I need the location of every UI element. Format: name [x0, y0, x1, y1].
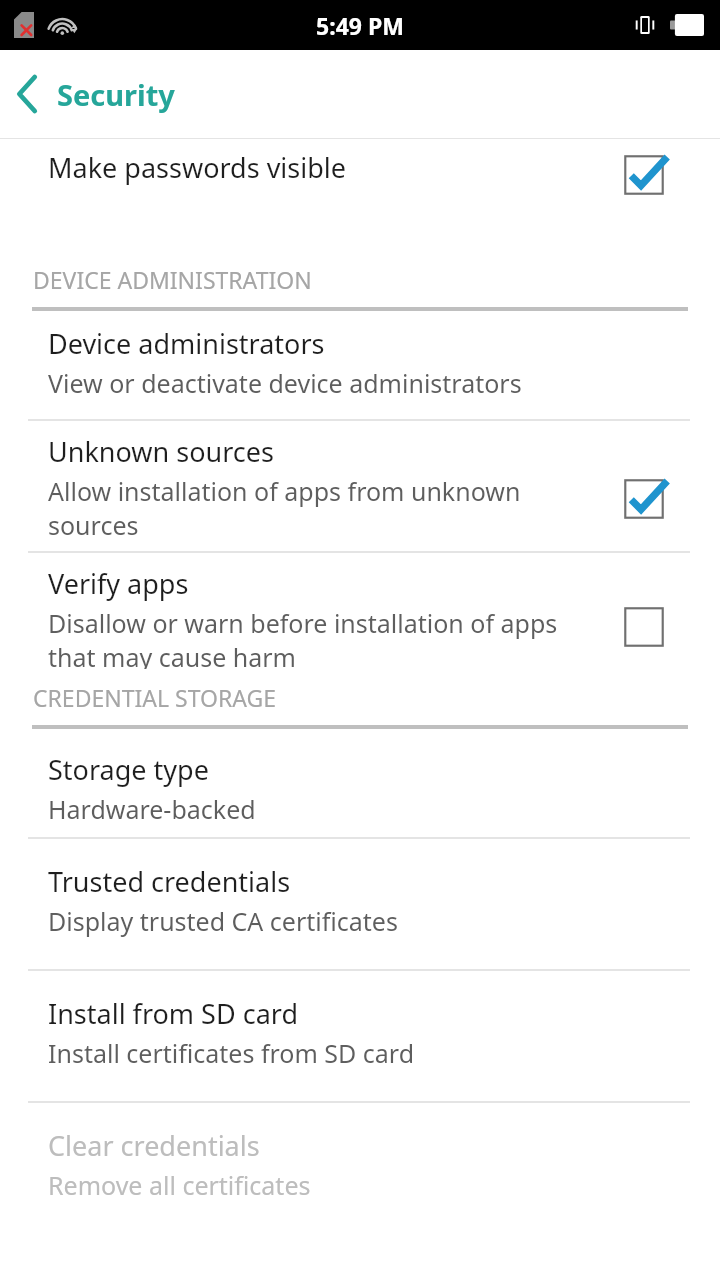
staticText: 5:49 PM [316, 10, 404, 41]
button[interactable]: Device administrators [0, 311, 720, 419]
staticText: Install certificates from SD card [48, 1036, 415, 1070]
staticText: Make passwords visible [48, 149, 347, 186]
button[interactable]: Trusted credentials [0, 839, 720, 969]
staticText: DEVICE ADMINISTRATION [33, 264, 312, 295]
button[interactable]: Back [0, 58, 56, 130]
staticText: Verify apps [48, 565, 189, 602]
staticText: Clear credentials [48, 1127, 260, 1164]
button[interactable]: Storage type [0, 729, 720, 837]
staticText: View or deactivate device administrators [48, 366, 522, 400]
staticText: Display trusted CA certificates [48, 904, 398, 938]
button[interactable]: Make passwords visible [616, 147, 672, 203]
staticText: Install from SD card [48, 995, 298, 1032]
staticText: Security [57, 75, 175, 114]
button[interactable]: Clear credentials [0, 1103, 720, 1223]
staticText: Trusted credentials [48, 863, 291, 900]
button[interactable]: Install from SD card [0, 971, 720, 1101]
staticText: Unknown sources [48, 433, 274, 470]
button[interactable]: Make passwords visible [0, 139, 720, 221]
staticText: Remove all certificates [48, 1168, 311, 1202]
staticText: Allow installation of apps from unknown … [48, 474, 568, 542]
staticText: Device administrators [48, 325, 325, 362]
button[interactable]: Unknown sources [616, 471, 672, 527]
staticText: Storage type [48, 751, 209, 788]
button[interactable]: Verify apps [616, 599, 672, 655]
staticText: Disallow or warn before installation of … [48, 606, 568, 669]
staticText: Hardware-backed [48, 792, 256, 826]
button[interactable]: Verify apps [0, 553, 720, 669]
button[interactable]: Unknown sources [0, 421, 720, 551]
staticText: CREDENTIAL STORAGE [33, 682, 276, 713]
